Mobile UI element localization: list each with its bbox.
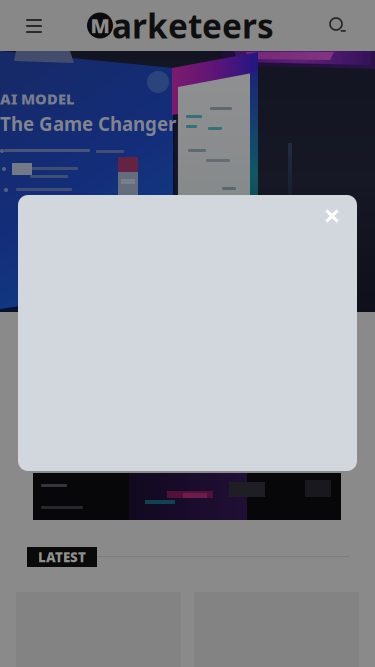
- button[interactable]: LATEST: [27, 547, 97, 567]
- staticText: AI MODEL: [0, 89, 75, 108]
- staticText: arketeers: [112, 3, 274, 48]
- staticText: M: [90, 12, 109, 39]
- button[interactable]: Search: [318, 6, 358, 46]
- button[interactable]: Menu: [14, 6, 54, 46]
- button[interactable]: Close: [315, 199, 349, 233]
- button[interactable]: Promotion: [33, 473, 341, 520]
- staticText: LATEST: [38, 548, 86, 566]
- staticText: The Game Changer: [0, 111, 176, 136]
